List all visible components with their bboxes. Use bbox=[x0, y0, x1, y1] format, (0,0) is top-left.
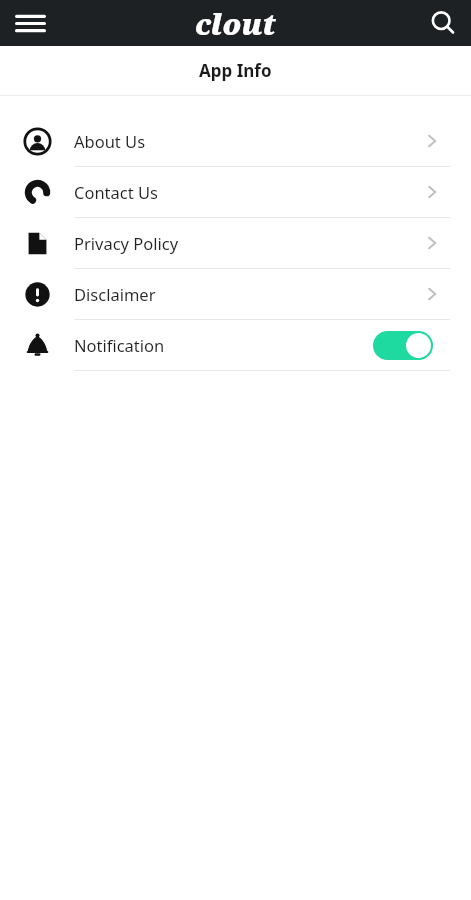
button[interactable]: Disclaimer bbox=[0, 269, 471, 320]
staticText: Contact Us bbox=[74, 181, 420, 203]
button[interactable]: Notification bbox=[0, 320, 471, 371]
button[interactable]: Menu bbox=[8, 1, 52, 45]
button[interactable]: About Us bbox=[0, 116, 471, 167]
staticText: About Us bbox=[74, 130, 420, 152]
button[interactable]: Privacy Policy bbox=[0, 218, 471, 269]
button[interactable]: Contact Us bbox=[0, 167, 471, 218]
button[interactable]: Notification toggle bbox=[373, 331, 433, 360]
staticText: Privacy Policy bbox=[74, 232, 420, 254]
staticText: clout bbox=[195, 4, 276, 43]
staticText: Notification bbox=[74, 334, 373, 356]
button[interactable]: Search bbox=[421, 1, 465, 45]
staticText: App Info bbox=[199, 59, 272, 82]
staticText: Disclaimer bbox=[74, 283, 420, 305]
